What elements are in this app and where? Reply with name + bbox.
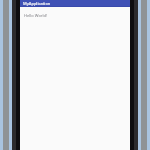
staticText: Hello World! <box>24 13 48 18</box>
staticText: MyApplication <box>23 1 51 6</box>
button[interactable]: MyApplication <box>20 0 130 7</box>
